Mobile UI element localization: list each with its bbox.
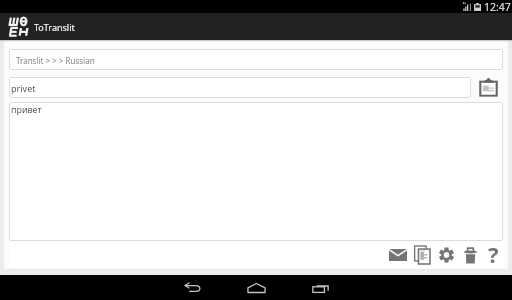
staticText: 12:47 — [484, 0, 511, 13]
button[interactable]: Back — [180, 275, 204, 300]
staticText: privet — [11, 82, 36, 94]
button[interactable]: привет — [9, 102, 503, 241]
button[interactable]: privet — [9, 77, 471, 98]
button[interactable]: Help — [482, 243, 504, 267]
button[interactable]: Home — [244, 275, 268, 300]
staticText: ? — [488, 239, 499, 263]
staticText: Translit > > > Russian — [16, 55, 95, 66]
button[interactable]: Send email — [386, 243, 410, 267]
button[interactable]: Paste from clipboard — [471, 77, 505, 98]
button[interactable]: Copy — [410, 243, 434, 267]
button[interactable]: Translit > > > Russian — [9, 49, 503, 70]
button[interactable]: Settings — [434, 243, 458, 267]
button[interactable]: Delete — [458, 243, 482, 267]
button[interactable]: Recent apps — [308, 275, 332, 300]
staticText: ToTranslit — [34, 21, 75, 33]
staticText: привет — [11, 103, 42, 115]
